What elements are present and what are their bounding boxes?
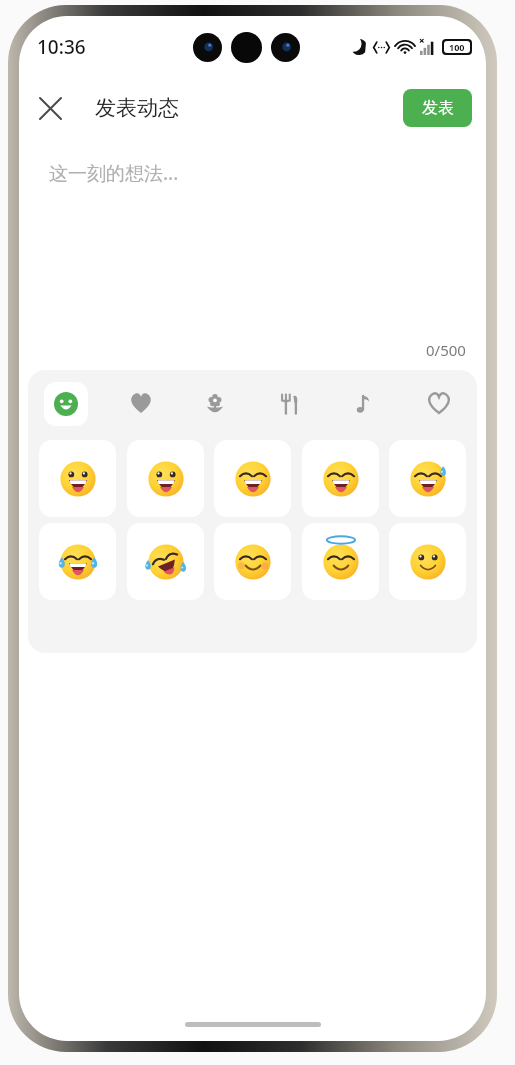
- staticText: 发表: [422, 98, 454, 118]
- staticText: 这一刻的想法...: [49, 160, 179, 186]
- staticText: 10:36: [37, 34, 86, 60]
- button[interactable]: 表情: [127, 440, 204, 517]
- button[interactable]: 表情: [39, 440, 116, 517]
- button[interactable]: 表情: [39, 523, 116, 600]
- button[interactable]: 自然: [193, 382, 237, 426]
- staticText: 发表动态: [95, 95, 179, 121]
- button[interactable]: 表情: [389, 440, 466, 517]
- button[interactable]: 表情: [214, 523, 291, 600]
- staticText: 0/500: [426, 340, 466, 360]
- staticText: 100: [449, 41, 465, 53]
- button[interactable]: 表情: [127, 523, 204, 600]
- button[interactable]: 喜爱: [119, 382, 163, 426]
- button[interactable]: 表情: [44, 382, 88, 426]
- button[interactable]: 表情: [389, 523, 466, 600]
- button[interactable]: 发表: [403, 89, 472, 127]
- button[interactable]: 表情: [302, 440, 379, 517]
- button[interactable]: 音乐: [342, 382, 386, 426]
- button[interactable]: 食物: [268, 382, 312, 426]
- button[interactable]: 表情: [302, 523, 379, 600]
- button[interactable]: 收藏: [417, 382, 461, 426]
- button[interactable]: 关闭: [27, 85, 73, 131]
- button[interactable]: 表情: [214, 440, 291, 517]
- button[interactable]: 这一刻的想法...: [19, 138, 486, 370]
